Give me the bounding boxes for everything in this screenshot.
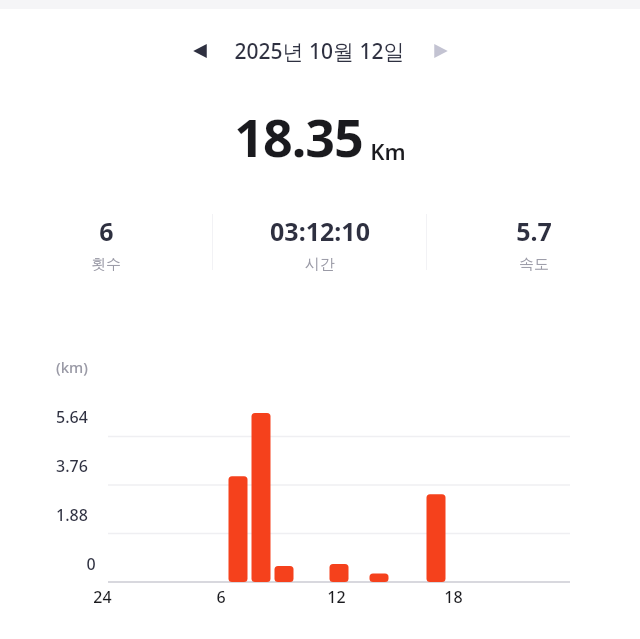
- staticText: 1.88: [56, 504, 88, 526]
- staticText: 5.7: [516, 214, 552, 248]
- staticText: 5.64: [56, 406, 88, 428]
- staticText: 18: [444, 586, 463, 608]
- staticText: 2025년 10월 12일: [234, 37, 405, 66]
- button[interactable]: Next day: [421, 31, 461, 71]
- button[interactable]: 5.7: [427, 214, 640, 274]
- staticText: 3.76: [56, 455, 88, 477]
- staticText: (km): [56, 357, 88, 377]
- staticText: 03:12:10: [270, 214, 370, 248]
- button[interactable]: Previous day: [180, 31, 220, 71]
- staticText: 6: [216, 586, 226, 608]
- staticText: 24: [93, 586, 112, 608]
- staticText: 속도: [519, 255, 549, 274]
- staticText: 0: [86, 553, 96, 575]
- button[interactable]: 03:12:10: [213, 214, 426, 274]
- staticText: 12: [327, 586, 346, 608]
- staticText: 18.35: [234, 101, 363, 172]
- staticText: 횟수: [91, 255, 121, 274]
- button[interactable]: 6: [0, 214, 212, 274]
- staticText: 6: [99, 214, 114, 248]
- staticText: 시간: [305, 255, 335, 274]
- staticText: Km: [370, 136, 406, 166]
